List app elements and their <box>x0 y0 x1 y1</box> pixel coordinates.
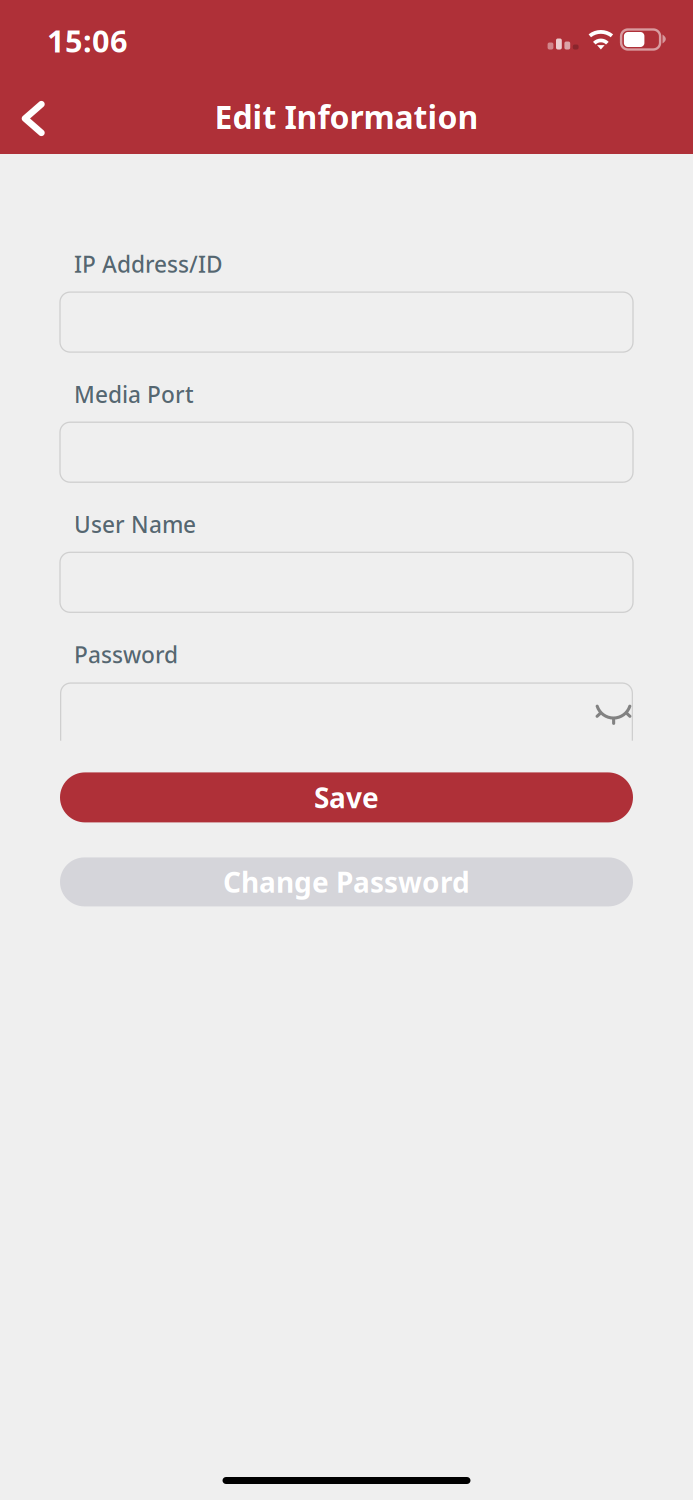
staticText: 15:06 <box>47 20 128 61</box>
staticText: Edit Information <box>214 95 478 138</box>
button[interactable]: Back <box>0 87 69 146</box>
button[interactable]: Save <box>60 772 633 822</box>
staticText: Change Password <box>223 863 470 900</box>
staticText: User Name <box>74 509 196 539</box>
staticText: Password <box>74 639 178 669</box>
staticText: Media Port <box>74 379 194 409</box>
staticText: IP Address/ID <box>74 249 223 279</box>
staticText: Save <box>314 779 379 816</box>
button[interactable]: Change Password <box>60 857 633 906</box>
